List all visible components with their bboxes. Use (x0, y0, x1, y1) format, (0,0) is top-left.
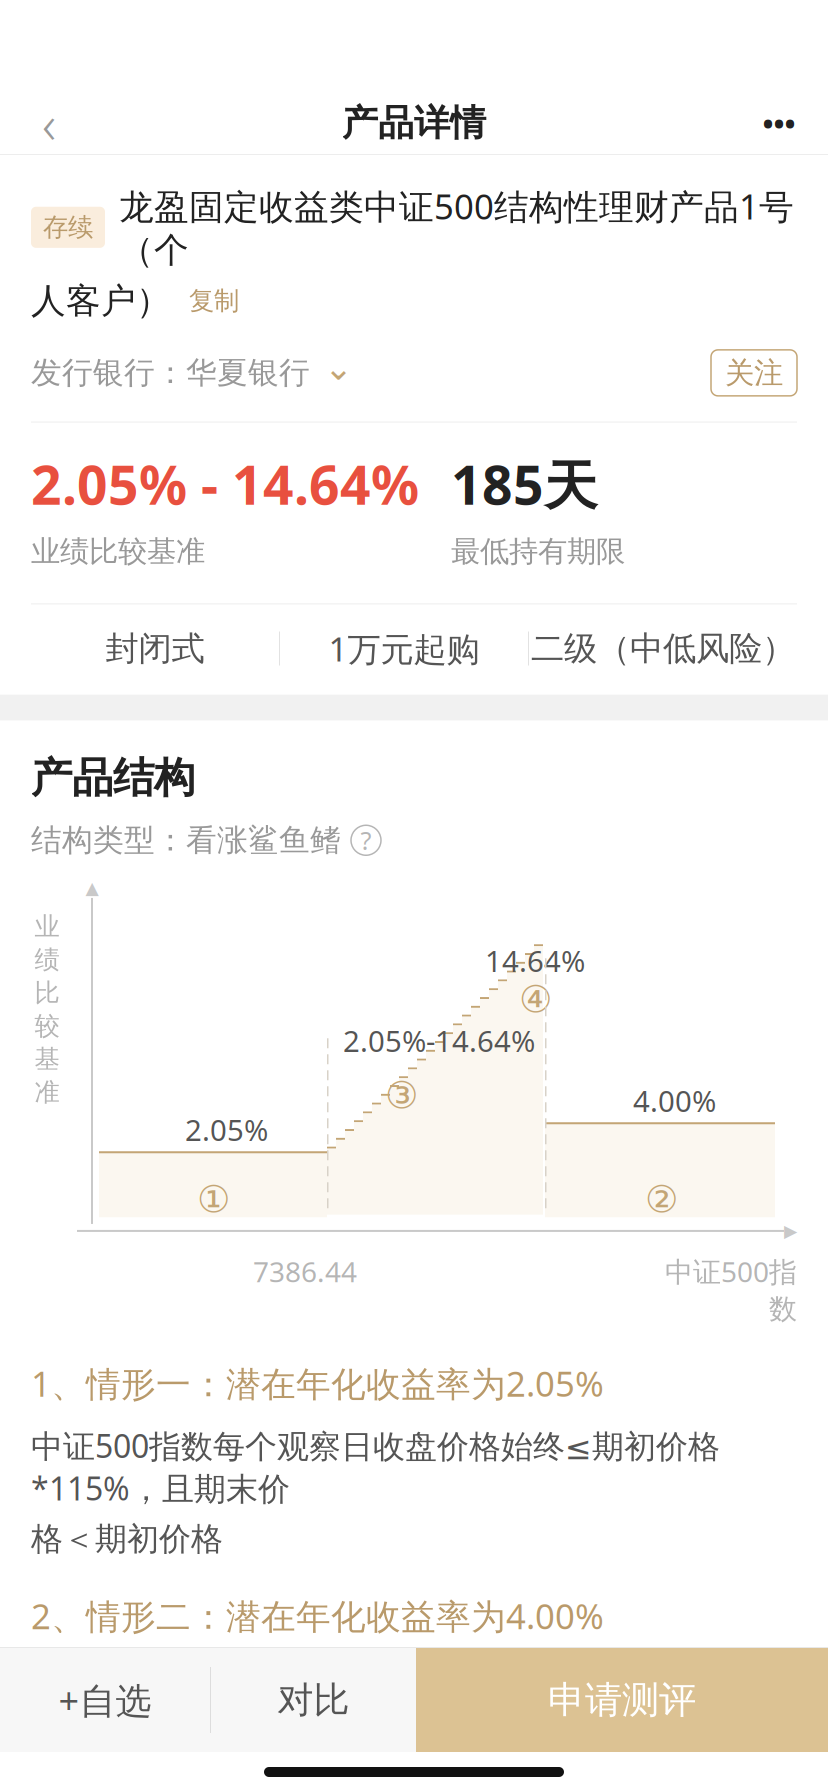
staticText: 2.05%-14.64% (343, 1021, 535, 1060)
button[interactable]: 复制 (189, 285, 239, 316)
staticText: ④ (519, 978, 552, 1021)
button[interactable]: 返回 (10, 95, 88, 151)
staticText: ③ (385, 1074, 418, 1117)
staticText: ▶ (784, 1221, 797, 1241)
staticText: ‹ (42, 88, 56, 158)
staticText: 中证500指 (665, 1253, 797, 1290)
button[interactable]: 申请测评 (416, 1648, 828, 1752)
staticText: +自选 (58, 1676, 151, 1724)
staticText: 最低持有期限 (451, 533, 625, 569)
staticText: 185天 (451, 448, 597, 519)
button[interactable]: 对比 (211, 1648, 416, 1752)
staticText: ? (360, 823, 371, 857)
button[interactable]: 关注 (711, 350, 797, 396)
button[interactable]: +自选 (0, 1648, 210, 1752)
staticText: 基 (34, 1044, 59, 1075)
staticText: 对比 (277, 1678, 349, 1722)
staticText: 绩 (34, 944, 59, 975)
staticText: 准 (34, 1077, 59, 1108)
staticText: 龙盈固定收益类中证500结构性理财产品1号（个 (119, 183, 794, 272)
staticText: 存续 (43, 212, 93, 243)
staticText: ••• (762, 103, 795, 142)
staticText: 业绩比较基准 (31, 533, 205, 569)
staticText: 结构类型：看涨鲨鱼鳍 (31, 821, 341, 859)
staticText: 封闭式 (105, 628, 204, 669)
staticText: 7386.44 (253, 1253, 357, 1290)
staticText: 发行银行：华夏银行 (31, 354, 310, 392)
button[interactable]: 结构类型说明 (351, 825, 381, 855)
staticText: 中证500指数每个观察日收盘价格始终≤期初价格*115%，且期末价 (31, 1424, 720, 1509)
staticText: 产品结构 (31, 753, 195, 803)
staticText: 14.64% (485, 941, 585, 980)
staticText: 产品详情 (342, 101, 486, 145)
staticText: 中证500指数每个观察日收盘价格曾经＞期初价格*115% (31, 1657, 725, 1742)
staticText: 人客户） (31, 280, 171, 322)
staticText: 业 (34, 911, 59, 942)
staticText: 关注 (725, 355, 783, 391)
staticText: 2.05% - 14.64% (31, 448, 419, 519)
staticText: 2.05% (185, 1110, 268, 1149)
button[interactable]: 展开发行银行 (310, 348, 353, 397)
staticText: ▲ (85, 878, 98, 898)
staticText: 1万元起购 (328, 626, 479, 671)
staticText: 二级（中低风险） (531, 628, 795, 669)
button[interactable]: 更多 (740, 95, 818, 151)
staticText: ① (197, 1178, 230, 1221)
staticText: 申请测评 (548, 1677, 696, 1723)
staticText: 数 (769, 1292, 797, 1326)
staticText: 1、情形一：潜在年化收益率为2.05% (31, 1360, 604, 1406)
staticText: 2、情形二：潜在年化收益率为4.00% (31, 1593, 604, 1639)
staticText: ⌄ (324, 348, 353, 387)
staticText: 较 (34, 1010, 59, 1041)
staticText: 复制 (189, 285, 239, 316)
staticText: ② (645, 1178, 678, 1221)
staticText: 格＜期初价格 (31, 1519, 223, 1559)
staticText: 4.00% (633, 1081, 716, 1120)
staticText: 比 (34, 977, 59, 1008)
